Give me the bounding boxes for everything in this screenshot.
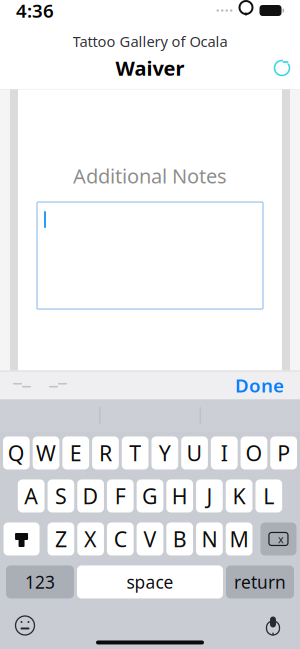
button[interactable]: Dictation: [256, 610, 290, 640]
staticText: R: [99, 439, 112, 467]
button[interactable]: Z: [48, 522, 74, 555]
button[interactable]: I: [211, 436, 238, 469]
staticText: M: [230, 525, 249, 553]
staticText: Y: [159, 439, 171, 467]
staticText: return: [234, 570, 286, 593]
button[interactable]: D: [77, 479, 104, 512]
staticText: J: [206, 482, 212, 510]
staticText: B: [173, 525, 187, 553]
button[interactable]: Next field: [40, 371, 76, 399]
button[interactable]: W: [33, 436, 59, 469]
button[interactable]: E: [62, 436, 89, 469]
button[interactable]: H: [166, 479, 193, 512]
staticText: V: [143, 525, 156, 553]
button[interactable]: J: [196, 479, 223, 512]
button[interactable]: space: [77, 565, 223, 598]
button[interactable]: X: [77, 522, 104, 555]
button[interactable]: P: [270, 436, 297, 469]
button[interactable]: V: [137, 522, 163, 555]
button[interactable]: Done: [223, 371, 296, 399]
button[interactable]: R: [92, 436, 119, 469]
staticText: S: [55, 482, 67, 510]
button[interactable]: K: [226, 479, 252, 512]
staticText: Done: [235, 373, 284, 398]
button[interactable]: N: [196, 522, 223, 555]
button[interactable]: U: [181, 436, 208, 469]
staticText: Q: [8, 439, 25, 467]
staticText: W: [36, 439, 56, 467]
staticText: E: [70, 439, 82, 467]
staticText: x: [278, 532, 284, 546]
button[interactable]: M: [226, 522, 252, 555]
staticText: Tattoo Gallery of Ocala: [72, 31, 227, 51]
staticText: space: [126, 570, 173, 593]
button[interactable]: F: [107, 479, 134, 512]
staticText: Additional Notes: [73, 162, 227, 189]
staticText: O: [245, 439, 262, 467]
button[interactable]: Shift: [4, 522, 40, 555]
button[interactable]: O: [241, 436, 267, 469]
button[interactable]: A: [18, 479, 45, 512]
staticText: D: [83, 482, 99, 510]
button[interactable]: Delete: [260, 522, 296, 555]
button[interactable]: G: [137, 479, 163, 512]
staticText: 123: [25, 570, 55, 593]
staticText: F: [115, 482, 126, 510]
button[interactable]: Previous field: [4, 371, 40, 399]
button[interactable]: L: [255, 479, 282, 512]
staticText: C: [114, 525, 127, 553]
staticText: Z: [55, 525, 67, 553]
button[interactable]: S: [48, 479, 74, 512]
staticText: L: [263, 482, 274, 510]
staticText: U: [187, 439, 203, 467]
staticText: I: [221, 439, 228, 467]
staticText: T: [129, 439, 141, 467]
button[interactable]: Reload: [264, 53, 300, 83]
staticText: A: [24, 482, 38, 510]
button[interactable]: C: [107, 522, 134, 555]
staticText: X: [84, 525, 97, 553]
staticText: P: [277, 439, 290, 467]
staticText: K: [233, 482, 246, 510]
button[interactable]: return: [226, 565, 294, 598]
staticText: G: [142, 482, 158, 510]
button[interactable]: 123: [6, 565, 74, 598]
staticText: Waiver: [115, 55, 184, 81]
staticText: N: [201, 525, 217, 553]
button[interactable]: Emoji keyboard: [8, 610, 42, 640]
button[interactable]: Q: [3, 436, 30, 469]
staticText: H: [172, 482, 188, 510]
button[interactable]: T: [122, 436, 148, 469]
staticText: 4:36: [16, 0, 54, 23]
button[interactable]: Y: [151, 436, 178, 469]
button[interactable]: B: [166, 522, 193, 555]
